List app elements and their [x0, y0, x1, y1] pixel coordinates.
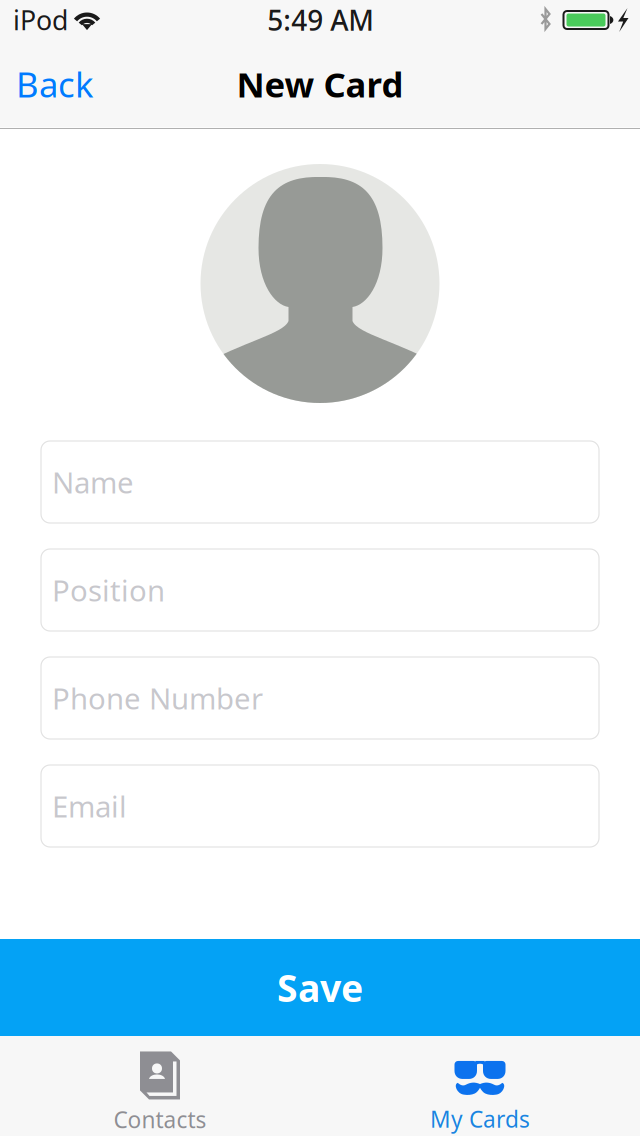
button[interactable]: My Cards — [320, 1036, 640, 1136]
staticText: Save — [277, 963, 363, 1012]
staticText: Name — [52, 462, 134, 501]
staticText: 5:49 AM — [267, 1, 374, 39]
staticText: New Card — [236, 61, 403, 107]
staticText: Contacts — [113, 1104, 206, 1134]
staticText: Phone Number — [52, 678, 263, 717]
button[interactable]: Save — [0, 939, 640, 1036]
button[interactable]: Back — [0, 54, 110, 114]
staticText: My Cards — [430, 1104, 530, 1134]
staticText: Position — [52, 570, 165, 609]
staticText: Email — [52, 786, 127, 825]
staticText: Back — [16, 61, 94, 107]
button[interactable]: Contacts — [0, 1036, 320, 1136]
staticText: iPod — [13, 2, 68, 38]
